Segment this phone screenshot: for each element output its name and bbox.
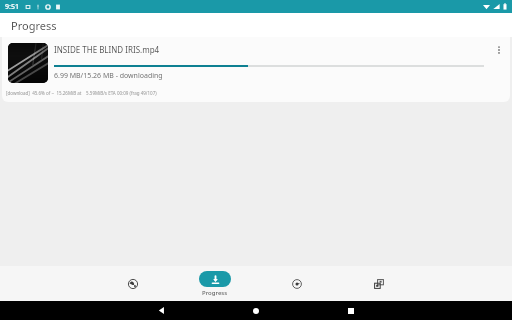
button[interactable]: History bbox=[274, 266, 320, 301]
button[interactable]: Recent apps bbox=[340, 301, 362, 320]
staticText: Progress bbox=[11, 18, 57, 33]
staticText: 6.99 MB/15.26 MB - downloading bbox=[54, 71, 163, 81]
button[interactable]: More bbox=[356, 266, 402, 301]
button[interactable]: Back bbox=[150, 301, 172, 320]
staticText: Progress bbox=[202, 289, 228, 297]
staticText: 9:51 bbox=[5, 2, 19, 12]
staticText: [download] 45.6% of ~ 15.26MiB at 5.59Mi… bbox=[6, 90, 157, 96]
button[interactable]: INSIDE THE BLIND IRIS.mp4 bbox=[2, 37, 510, 102]
button[interactable]: Home bbox=[245, 301, 267, 320]
button[interactable]: Progress bbox=[192, 266, 238, 301]
button[interactable]: Browser bbox=[110, 266, 156, 301]
staticText: INSIDE THE BLIND IRIS.mp4 bbox=[54, 44, 160, 55]
button[interactable]: More options bbox=[488, 39, 510, 61]
